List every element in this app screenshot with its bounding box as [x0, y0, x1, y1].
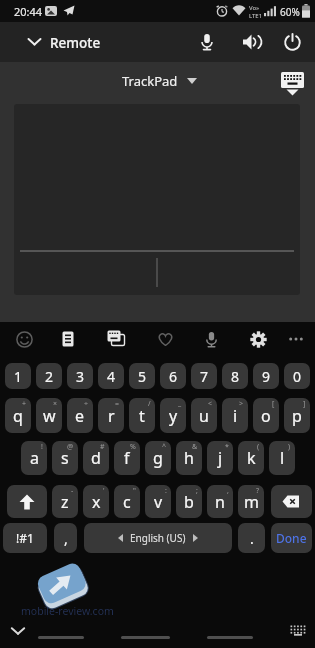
staticText: @	[67, 442, 74, 452]
button[interactable]	[7, 485, 47, 518]
button[interactable]	[280, 30, 304, 54]
button[interactable]: r	[98, 398, 124, 433]
staticText: /	[148, 399, 151, 409]
button[interactable]: q	[5, 398, 31, 433]
button[interactable]: m	[238, 485, 264, 518]
button[interactable]: c	[114, 485, 140, 518]
staticText: k	[247, 447, 256, 469]
button[interactable]: g	[145, 441, 171, 475]
button[interactable]: 9	[253, 363, 279, 389]
button[interactable]	[52, 323, 84, 355]
button[interactable]: a	[21, 441, 47, 475]
button[interactable]	[5, 620, 31, 642]
staticText: !	[41, 442, 43, 452]
button[interactable]	[14, 104, 300, 295]
button[interactable]	[280, 323, 312, 355]
staticText: 6	[169, 367, 178, 386]
button[interactable]: j	[207, 441, 233, 475]
button[interactable]: TrackPad	[122, 70, 197, 92]
button[interactable]	[22, 30, 46, 54]
staticText: h	[184, 447, 194, 469]
staticText: 3	[76, 367, 85, 386]
staticText: Vo»	[249, 4, 260, 12]
staticText: LTE1	[249, 12, 263, 20]
button[interactable]: b	[176, 485, 202, 518]
staticText: 9	[262, 367, 271, 386]
staticText: )	[288, 442, 291, 452]
button[interactable]: i	[222, 398, 248, 433]
staticText: ,	[64, 529, 68, 548]
staticText: w	[43, 405, 56, 427]
button[interactable]	[286, 620, 310, 640]
staticText: q	[13, 405, 23, 427]
button[interactable]: 3	[67, 363, 93, 389]
staticText: .	[250, 529, 254, 548]
button[interactable]: v	[145, 485, 171, 518]
staticText: 7	[200, 367, 209, 386]
button[interactable]: ,	[54, 523, 77, 553]
button[interactable]: u	[191, 398, 217, 433]
button[interactable]: 1	[5, 363, 31, 389]
button[interactable]	[149, 323, 181, 355]
staticText: n	[215, 491, 225, 513]
staticText: ×	[53, 399, 58, 409]
button[interactable]	[278, 70, 308, 98]
staticText: a	[30, 447, 39, 469]
button[interactable]: x	[83, 485, 109, 518]
button[interactable]: t	[129, 398, 155, 433]
button[interactable]: p	[284, 398, 310, 433]
button[interactable]	[195, 323, 227, 355]
button[interactable]: 6	[160, 363, 186, 389]
staticText: m	[244, 491, 259, 513]
button[interactable]: 5	[129, 363, 155, 389]
button[interactable]: 2	[36, 363, 62, 389]
staticText: 20:44	[14, 4, 43, 19]
button[interactable]	[271, 485, 312, 518]
staticText: ÷	[84, 399, 89, 409]
button[interactable]: 8	[222, 363, 248, 389]
button[interactable]: n	[207, 485, 233, 518]
staticText: ?	[256, 486, 260, 496]
button[interactable]	[242, 323, 274, 355]
button[interactable]	[8, 323, 40, 355]
staticText: c	[123, 491, 131, 513]
staticText: mobile-review.com	[21, 604, 114, 618]
button[interactable]: w	[36, 398, 62, 433]
staticText: =	[115, 399, 120, 409]
button[interactable]	[100, 323, 132, 355]
button[interactable]: .	[238, 523, 265, 553]
staticText: #	[100, 442, 105, 452]
button[interactable]	[195, 30, 219, 54]
button[interactable]: e	[67, 398, 93, 433]
staticText: t	[139, 405, 145, 427]
staticText: *	[225, 442, 229, 452]
staticText: 8	[231, 367, 240, 386]
button[interactable]: o	[253, 398, 279, 433]
button[interactable]: s	[52, 441, 78, 475]
button[interactable]	[239, 30, 263, 54]
staticText: ^	[162, 442, 167, 452]
staticText: >	[239, 399, 244, 409]
staticText: &	[192, 442, 198, 452]
staticText: TrackPad	[122, 72, 178, 90]
button[interactable]: 0	[284, 363, 310, 389]
button[interactable]: y	[160, 398, 186, 433]
button[interactable]: h	[176, 441, 202, 475]
staticText: :	[165, 486, 167, 496]
button[interactable]: f	[114, 441, 140, 475]
button[interactable]: l	[269, 441, 295, 475]
button[interactable]: 7	[191, 363, 217, 389]
button[interactable]: English (US)	[84, 523, 232, 553]
staticText: p	[292, 405, 302, 427]
staticText: r	[108, 405, 115, 427]
staticText: +	[22, 399, 27, 409]
staticText: <	[208, 399, 213, 409]
button[interactable]: 4	[98, 363, 124, 389]
button[interactable]: k	[238, 441, 264, 475]
button[interactable]: Done	[271, 523, 312, 553]
button[interactable]: z	[52, 485, 78, 518]
button[interactable]: !#1	[3, 523, 47, 553]
button[interactable]: d	[83, 441, 109, 475]
staticText: (	[257, 442, 260, 452]
staticText: !#1	[16, 530, 34, 546]
